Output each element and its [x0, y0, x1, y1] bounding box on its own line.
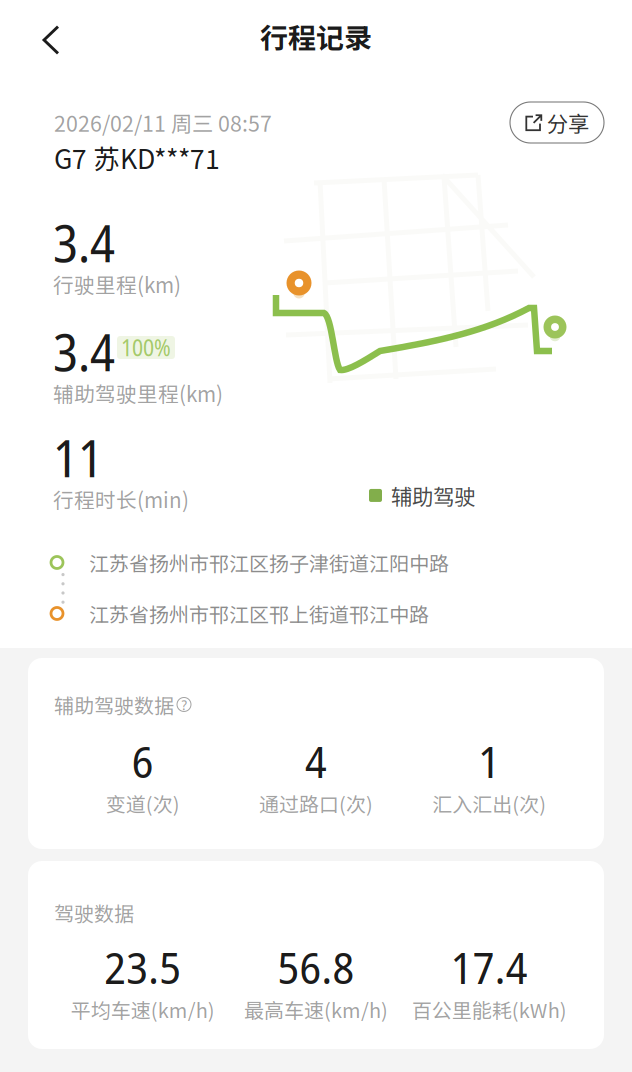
- staticText: 江苏省扬州市邗江区邗上街道邗江中路: [89, 599, 429, 628]
- staticText: 行驶里程(km): [53, 269, 181, 299]
- staticText: ?: [181, 694, 186, 714]
- button[interactable]: Back: [0, 13, 82, 67]
- staticText: 汇入汇出(次): [432, 789, 546, 818]
- staticText: 分享: [547, 107, 589, 138]
- staticText: 辅助驾驶: [391, 480, 475, 511]
- staticText: 辅助驾驶里程(km): [53, 378, 223, 408]
- staticText: 变道(次): [106, 789, 180, 818]
- staticText: 3.4: [53, 317, 115, 386]
- staticText: 江苏省扬州市邗江区扬子津街道江阳中路: [89, 548, 449, 577]
- staticText: 3.4: [53, 208, 115, 277]
- staticText: 23.5: [104, 937, 181, 997]
- staticText: 辅助驾驶数据: [54, 690, 174, 719]
- staticText: 行程时长(min): [53, 484, 189, 514]
- staticText: 11: [53, 423, 103, 492]
- staticText: 平均车速(km/h): [71, 995, 215, 1024]
- staticText: 56.8: [277, 937, 354, 997]
- staticText: 4: [305, 731, 327, 791]
- staticText: G7 苏KD***71: [54, 138, 220, 177]
- staticText: 2026/02/11 周三 08:57: [54, 107, 272, 138]
- button[interactable]: 分享: [510, 102, 604, 143]
- staticText: 驾驶数据: [54, 898, 134, 927]
- staticText: 通过路口(次): [259, 789, 373, 818]
- staticText: 百公里能耗(kWh): [412, 995, 567, 1024]
- staticText: 1: [478, 731, 500, 791]
- staticText: 最高车速(km/h): [244, 995, 388, 1024]
- staticText: 6: [132, 731, 154, 791]
- staticText: 17.4: [451, 937, 528, 997]
- staticText: 行程记录: [260, 16, 372, 56]
- staticText: 100%: [121, 332, 171, 363]
